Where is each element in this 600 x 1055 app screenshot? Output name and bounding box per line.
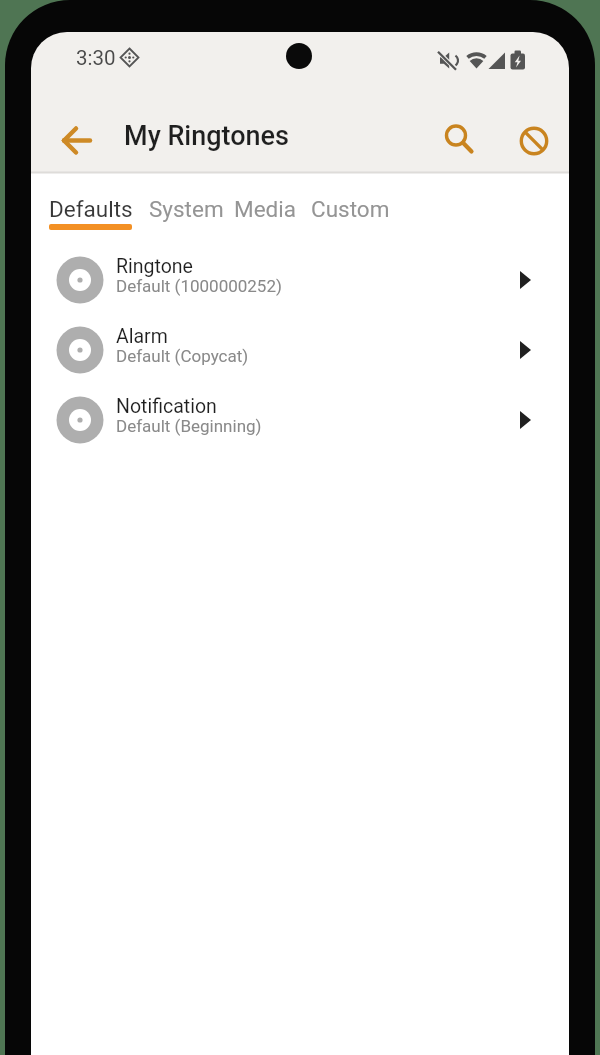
button[interactable]: Defaults — [41, 185, 139, 235]
staticText: My Ringtones — [124, 120, 290, 152]
staticText: Alarm — [116, 325, 168, 348]
staticText: Defaults — [49, 196, 133, 222]
button[interactable]: Alarm — [31, 315, 569, 385]
button[interactable]: Custom — [303, 185, 399, 235]
staticText: Custom — [311, 196, 390, 222]
button[interactable]: Notification — [31, 385, 569, 455]
button[interactable] — [52, 116, 100, 164]
staticText: Default (Copycat) — [116, 346, 249, 366]
button[interactable] — [500, 326, 548, 374]
button[interactable]: System — [141, 185, 231, 235]
staticText: Default (Beginning) — [116, 416, 262, 436]
staticText: 3:30 — [76, 46, 116, 70]
button[interactable]: Media — [226, 185, 306, 235]
button[interactable] — [500, 256, 548, 304]
button[interactable]: Ringtone — [31, 245, 569, 315]
staticText: Default (1000000252) — [116, 276, 282, 296]
staticText: Media — [234, 196, 296, 222]
staticText: Notification — [116, 395, 217, 418]
staticText: System — [149, 196, 224, 222]
button[interactable] — [432, 116, 480, 164]
staticText: Ringtone — [116, 255, 193, 278]
button[interactable] — [500, 396, 548, 444]
button[interactable] — [510, 117, 558, 165]
